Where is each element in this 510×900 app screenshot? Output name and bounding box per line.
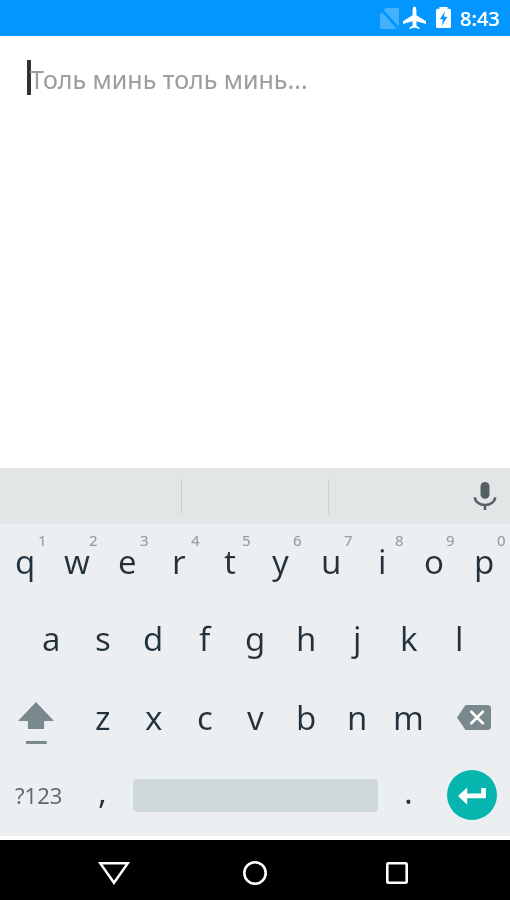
button[interactable]: r [153,524,204,602]
button[interactable]: Толь минь толь минь... [0,36,510,132]
staticText: k [400,616,418,661]
staticText: 8 [395,530,404,550]
button[interactable]: p [459,524,510,602]
staticText: b [296,695,317,740]
staticText: v [247,695,264,740]
staticText: q [15,539,36,584]
staticText: 2 [89,530,98,550]
button[interactable]: i [357,524,408,602]
button[interactable]: m [383,680,434,758]
staticText: f [199,616,211,661]
button[interactable]: w [51,524,102,602]
button[interactable]: s [77,602,128,680]
staticText: e [118,539,137,584]
staticText: 0 [497,530,506,550]
staticText: c [197,695,213,740]
button[interactable]: u [306,524,357,602]
staticText: o [424,539,444,584]
staticText: g [245,616,266,661]
button[interactable]: . [383,758,434,836]
staticText: d [143,616,164,661]
button[interactable]: Home [197,840,312,900]
button[interactable]: b [281,680,332,758]
staticText: . [404,769,413,814]
staticText: l [455,616,464,661]
button[interactable]: q [0,524,51,602]
staticText: 3 [140,530,149,550]
staticText: j [353,616,362,661]
button[interactable]: c [179,680,230,758]
button[interactable]: a [26,602,77,680]
staticText: w [64,539,90,584]
button[interactable]: l [434,602,485,680]
button[interactable]: , [77,758,128,836]
staticText: ?123 [15,780,63,810]
staticText: z [95,695,111,740]
button[interactable]: Recents [339,840,454,900]
staticText: 8:43 [460,5,500,32]
button[interactable]: n [332,680,383,758]
staticText: 7 [344,530,353,550]
staticText: p [474,539,495,584]
staticText: m [393,695,424,740]
staticText: 6 [293,530,302,550]
staticText: 5 [242,530,251,550]
button[interactable]: Delete [434,680,510,758]
button[interactable]: y [255,524,306,602]
staticText: y [272,539,289,584]
staticText: r [172,539,186,584]
staticText: t [224,539,236,584]
button[interactable]: ?123 [0,758,77,836]
staticText: u [321,539,342,584]
staticText: x [145,695,163,740]
staticText: 9 [446,530,455,550]
staticText: i [378,539,387,584]
button[interactable]: o [408,524,459,602]
staticText: 4 [191,530,200,550]
button[interactable]: Back [56,840,171,900]
button[interactable]: j [332,602,383,680]
button[interactable]: f [179,602,230,680]
staticText: Толь минь толь минь... [30,62,308,96]
button[interactable] [128,758,383,836]
button[interactable]: h [281,602,332,680]
staticText: a [42,616,61,661]
button[interactable]: g [230,602,281,680]
staticText: , [98,769,107,814]
staticText: 1 [38,530,47,550]
button[interactable]: v [230,680,281,758]
button[interactable]: k [383,602,434,680]
button[interactable]: t [204,524,255,602]
button[interactable]: z [77,680,128,758]
staticText: h [296,616,317,661]
staticText: n [347,695,368,740]
button[interactable]: x [128,680,179,758]
button[interactable]: Voice input [464,468,506,524]
button[interactable]: e [102,524,153,602]
button[interactable]: Enter [447,770,497,820]
button[interactable]: Shift [0,680,77,758]
staticText: s [95,616,111,661]
button[interactable]: d [128,602,179,680]
